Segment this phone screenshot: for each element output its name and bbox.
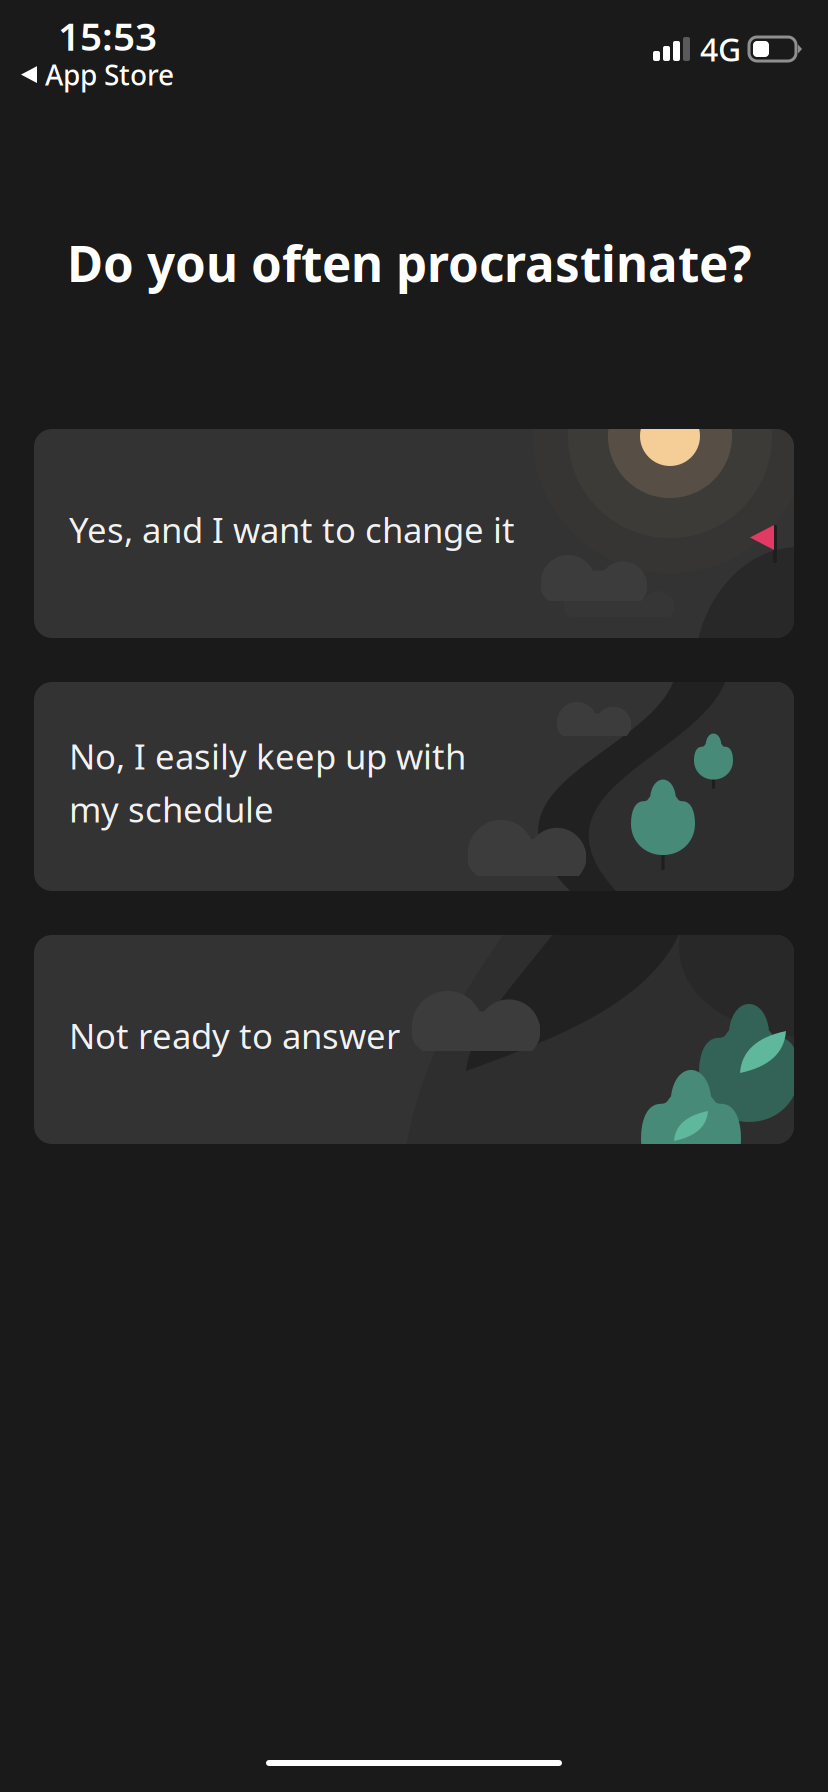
button[interactable]: App Store (17, 48, 178, 101)
staticText: No, I easily keep up with my schedule (69, 733, 466, 832)
staticText: 15:53 (58, 10, 157, 61)
button[interactable]: Not ready to answer (34, 935, 794, 1144)
staticText: 4G (700, 28, 741, 70)
button[interactable]: No, I easily keep up with my schedule (34, 682, 794, 891)
button[interactable]: Yes, and I want to change it (34, 429, 794, 638)
staticText: Yes, and I want to change it (69, 506, 515, 552)
staticText: Not ready to answer (69, 1012, 400, 1058)
staticText: App Store (45, 56, 174, 93)
staticText: Do you often procrastinate? (67, 230, 752, 295)
